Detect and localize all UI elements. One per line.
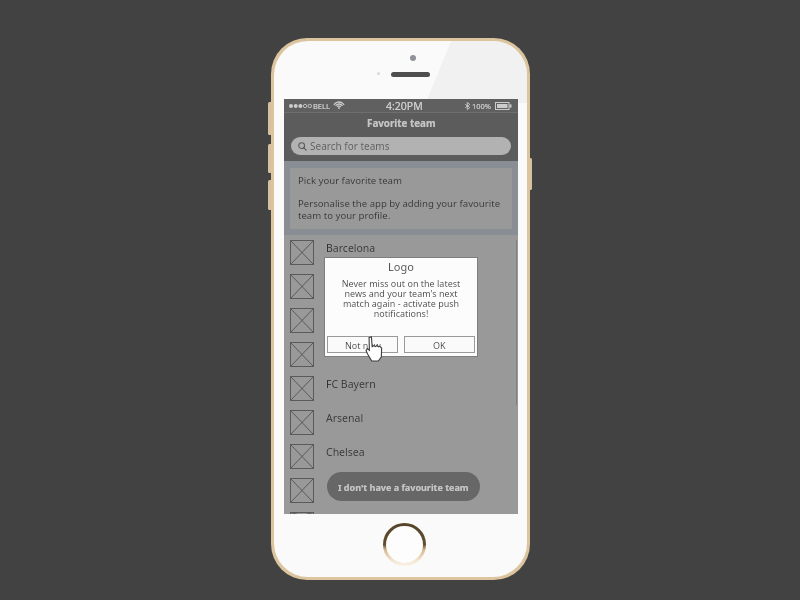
staticText: Pick your favorite team <box>298 174 402 187</box>
button[interactable] <box>284 507 518 514</box>
staticText: BELL <box>313 101 330 111</box>
staticText: Personalise the app by adding your favou… <box>298 197 506 221</box>
staticText: Search for teams <box>310 139 390 153</box>
staticText: 100% <box>472 101 492 111</box>
button[interactable]: I don't have a favourite team <box>327 472 480 501</box>
staticText: Real Madrid <box>326 275 386 289</box>
button[interactable]: Liverpool <box>284 337 518 371</box>
button[interactable]: Chelsea <box>284 439 518 473</box>
button[interactable]: Arsenal <box>284 405 518 439</box>
staticText: Logo <box>388 259 414 274</box>
button[interactable]: Search for teams <box>291 137 511 155</box>
staticText: Not now <box>345 339 381 351</box>
button[interactable]: Man Utd <box>284 303 518 337</box>
button[interactable]: OK <box>405 337 474 352</box>
staticText: Liverpool <box>326 343 372 357</box>
staticText: 4:20PM <box>386 99 423 112</box>
staticText: Never miss out on the latest news and yo… <box>336 277 466 319</box>
staticText: I don't have a favourite team <box>338 481 469 493</box>
button[interactable]: Not now <box>328 337 397 352</box>
button[interactable]: Real Madrid <box>284 269 518 303</box>
staticText: Arsenal <box>326 411 364 425</box>
staticText: Favorite team <box>367 117 436 130</box>
staticText: OK <box>433 339 446 351</box>
staticText: Barcelona <box>326 241 376 255</box>
staticText: Chelsea <box>326 445 365 459</box>
button[interactable]: FC Bayern <box>284 371 518 405</box>
button[interactable]: Barcelona <box>284 235 518 269</box>
staticText: FC Bayern <box>326 377 376 391</box>
